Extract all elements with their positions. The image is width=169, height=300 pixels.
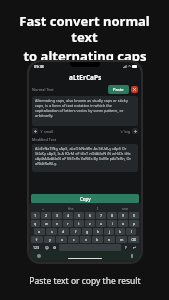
- button[interactable]: Copy: [31, 194, 139, 203]
- button[interactable]: j: [104, 228, 114, 235]
- staticText: c: [73, 237, 75, 242]
- staticText: a: [38, 229, 41, 234]
- button[interactable]: 7: [96, 212, 106, 219]
- button[interactable]: ☺: [43, 244, 50, 251]
- button[interactable]: w: [41, 220, 51, 227]
- staticText: 7: [100, 213, 103, 218]
- staticText: l: [131, 229, 132, 234]
- button[interactable]: use: [120, 206, 130, 211]
- button[interactable]: ⌫: [128, 236, 139, 243]
- staticText: ⌫: [131, 238, 137, 242]
- button[interactable]: 0: [129, 212, 139, 219]
- staticText: the: [68, 206, 74, 211]
- staticText: 0: [133, 213, 136, 218]
- button[interactable]: A: [32, 128, 38, 134]
- button[interactable]: 8: [107, 212, 117, 219]
- staticText: ⇧: [35, 238, 39, 242]
- staticText: 3: [56, 213, 59, 218]
- button[interactable]: 6: [85, 212, 95, 219]
- staticText: aLtErCaPs: [69, 73, 102, 82]
- button[interactable]: e: [52, 220, 62, 227]
- button[interactable]: v: [80, 236, 91, 243]
- staticText: s: [51, 229, 53, 234]
- button[interactable]: l: [126, 228, 136, 235]
- staticText: Copy: [80, 196, 91, 202]
- button[interactable]: u: [96, 220, 106, 227]
- button[interactable]: i: [107, 220, 117, 227]
- button[interactable]: k: [115, 228, 125, 235]
- button[interactable]: ?: [122, 244, 129, 251]
- staticText: o: [122, 221, 125, 226]
- button[interactable]: Paste: [108, 85, 129, 94]
- button[interactable]: I: [95, 206, 101, 211]
- button[interactable]: t: [74, 220, 84, 227]
- button[interactable]: r: [63, 220, 73, 227]
- staticText: b: [96, 237, 99, 242]
- staticText: Paste: [113, 87, 124, 92]
- staticText: e: [56, 221, 59, 226]
- button[interactable]: B: [132, 128, 138, 134]
- staticText: +: [42, 206, 45, 211]
- button[interactable]: ⇧: [31, 236, 43, 243]
- button[interactable]: m: [116, 236, 127, 243]
- button[interactable]: Clear: [131, 86, 138, 93]
- button[interactable]: the: [66, 206, 76, 211]
- button[interactable]: x: [56, 236, 67, 243]
- button[interactable]: ALtErNaTiNg cApS, aLsO kNoWn As StUdLy c…: [32, 144, 138, 172]
- staticText: 4: [67, 213, 70, 218]
- staticText: 9: [122, 213, 125, 218]
- button[interactable]: 123: [31, 244, 42, 251]
- staticText: Fast convert normal text: [8, 12, 161, 45]
- button[interactable]: c: [68, 236, 79, 243]
- staticText: 'v' big: [120, 129, 130, 134]
- button[interactable]: ⚙: [51, 244, 58, 251]
- button[interactable]: ↵: [130, 244, 139, 251]
- staticText: 't' small: [40, 129, 53, 134]
- button[interactable]: a: [34, 228, 45, 235]
- staticText: ☺: [45, 246, 49, 250]
- staticText: t: [78, 221, 80, 226]
- staticText: f: [75, 229, 77, 234]
- staticText: u: [100, 221, 103, 226]
- button[interactable]: 2: [41, 212, 51, 219]
- staticText: ⚙: [53, 246, 57, 250]
- button[interactable]: Alternating caps, also known as studly c…: [32, 96, 138, 126]
- staticText: 09:38: [34, 64, 44, 69]
- staticText: h: [97, 229, 100, 234]
- button[interactable]: y: [44, 236, 55, 243]
- button[interactable]: f: [70, 228, 81, 235]
- staticText: ↵: [133, 246, 137, 250]
- staticText: k: [119, 229, 121, 234]
- button[interactable]: q: [31, 220, 40, 227]
- staticText: x: [61, 237, 63, 242]
- staticText: r: [67, 221, 69, 226]
- button[interactable]: 1: [31, 212, 40, 219]
- staticText: g: [86, 229, 89, 234]
- staticText: 5: [78, 213, 81, 218]
- button[interactable]: 3: [52, 212, 62, 219]
- button[interactable]: d: [58, 228, 69, 235]
- staticText: ?: [125, 245, 127, 250]
- button[interactable]: h: [93, 228, 103, 235]
- staticText: I: [97, 206, 99, 211]
- button[interactable]: g: [82, 228, 92, 235]
- button[interactable]: +: [40, 206, 47, 211]
- button[interactable]: 5: [74, 212, 84, 219]
- staticText: d: [62, 229, 65, 234]
- staticText: Normal Text: [32, 87, 54, 92]
- button[interactable]: p: [129, 220, 139, 227]
- button[interactable]: s: [46, 228, 57, 235]
- button[interactable]: 4: [63, 212, 73, 219]
- staticText: 2: [45, 213, 48, 218]
- button[interactable]: b: [92, 236, 103, 243]
- button[interactable]: z: [85, 220, 95, 227]
- staticText: to alternating caps: [23, 47, 147, 65]
- button[interactable]: n: [104, 236, 115, 243]
- staticText: y: [49, 237, 51, 242]
- staticText: 123: [33, 245, 40, 250]
- button[interactable]: 9: [118, 212, 128, 219]
- staticText: j: [109, 229, 110, 234]
- staticText: Alternating caps, also known as studly c…: [35, 98, 135, 118]
- button[interactable]: o: [118, 220, 128, 227]
